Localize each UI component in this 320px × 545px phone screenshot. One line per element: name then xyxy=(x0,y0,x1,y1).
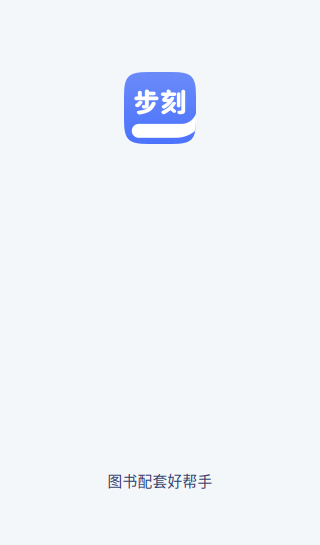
staticText: 步刻 xyxy=(133,86,187,118)
staticText: 图书配套好帮手 xyxy=(107,470,212,491)
